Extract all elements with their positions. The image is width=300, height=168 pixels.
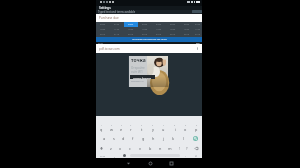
button[interactable]: b	[145, 143, 155, 153]
button[interactable]: 01:00	[110, 22, 124, 27]
button[interactable]: 5	[136, 123, 147, 133]
button[interactable]: n	[155, 143, 165, 153]
button[interactable]: 17:30	[194, 27, 202, 32]
staticText: 04:00	[156, 23, 162, 26]
button[interactable]: x	[115, 143, 125, 153]
staticText: 12:30	[128, 28, 134, 31]
button[interactable]: 22:15	[124, 32, 138, 37]
button[interactable]: Emoji	[119, 153, 129, 158]
button[interactable]: l	[178, 133, 188, 143]
button[interactable]: Advertisement	[128, 56, 168, 87]
button[interactable]: 24:15	[152, 32, 166, 37]
button[interactable]: g	[138, 133, 148, 143]
staticText: b	[149, 146, 152, 151]
button[interactable]: Shift	[96, 143, 106, 153]
staticText: 06:00	[184, 23, 190, 26]
button[interactable]: 11:30	[110, 27, 124, 32]
button[interactable]: 03:00	[138, 22, 152, 27]
staticText: .	[185, 154, 186, 158]
button[interactable]: 3	[116, 123, 126, 133]
button[interactable]: a	[100, 133, 109, 143]
button[interactable]: 1	[96, 123, 106, 133]
button[interactable]: Recents	[166, 158, 176, 168]
staticText: x	[119, 146, 122, 151]
button[interactable]: m	[165, 143, 175, 153]
staticText: y	[152, 127, 154, 132]
button[interactable]: 06:00	[180, 22, 194, 27]
button[interactable]: f	[128, 133, 138, 143]
button[interactable]: 14:30	[152, 27, 166, 32]
staticText: p	[195, 127, 198, 132]
staticText: 23:15	[142, 33, 148, 36]
button[interactable]: ?	[183, 143, 191, 153]
button[interactable]: s	[109, 133, 118, 143]
button[interactable]: j	[158, 133, 168, 143]
button[interactable]: c	[125, 143, 135, 153]
button[interactable]: 16:30	[180, 27, 194, 32]
button[interactable]: 13:30	[138, 27, 152, 32]
button[interactable]: 15:30	[166, 27, 180, 32]
button[interactable]: 25:15	[166, 32, 180, 37]
staticText: Complete the filled list per entry	[132, 38, 167, 41]
button[interactable]: pdf.to.we.com	[96, 44, 202, 53]
staticText: 5	[141, 124, 143, 127]
button[interactable]: 04:00	[152, 22, 166, 27]
button[interactable]: ,	[110, 153, 119, 158]
staticText: d	[122, 136, 125, 141]
button[interactable]: d	[118, 133, 128, 143]
staticText: 02:00	[128, 23, 134, 26]
button[interactable]: 0	[191, 123, 202, 133]
button[interactable]: ?123	[96, 153, 110, 158]
button[interactable]: k	[168, 133, 178, 143]
staticText: точка	[131, 57, 146, 64]
staticText: 05:00	[170, 23, 176, 26]
button[interactable]: v	[135, 143, 145, 153]
staticText: 03:00	[142, 23, 148, 26]
staticText: 7	[163, 124, 165, 127]
button[interactable]: 26:15	[180, 32, 194, 37]
button[interactable]: 05:00	[166, 22, 180, 27]
button[interactable]: !	[175, 143, 183, 153]
button[interactable]: 02:00	[124, 22, 138, 27]
button[interactable]: Search	[188, 133, 202, 143]
staticText: 26:15	[184, 33, 190, 36]
button[interactable]: 23:15	[138, 32, 152, 37]
button[interactable]: Complete the filled list per entry	[96, 37, 202, 42]
button[interactable]: 9	[180, 123, 191, 133]
staticText: 1	[101, 124, 103, 127]
staticText: f	[132, 136, 134, 141]
button[interactable]: Enter	[190, 153, 202, 158]
staticText: 01:00	[114, 23, 120, 26]
button[interactable]: h	[148, 133, 158, 143]
button[interactable]: 8	[169, 123, 180, 133]
button[interactable]: 07:00	[194, 22, 202, 27]
staticText: w	[110, 127, 113, 132]
button[interactable]: 4	[126, 123, 136, 133]
button[interactable]: 27:15	[194, 32, 202, 37]
staticText: o	[184, 127, 187, 132]
button[interactable]: 21:15	[110, 32, 124, 37]
button[interactable]: Back	[123, 158, 133, 168]
button[interactable]: 6	[147, 123, 158, 133]
staticText: a	[103, 136, 106, 141]
button[interactable]: z	[106, 143, 115, 153]
button[interactable]: 10:30	[96, 27, 110, 32]
button[interactable]: 00:00	[96, 22, 110, 27]
staticText: 20:15	[100, 33, 106, 36]
staticText: ?123	[100, 154, 106, 157]
staticText: n	[159, 146, 162, 151]
button[interactable]: 2	[106, 123, 116, 133]
button[interactable]: 12:30	[124, 27, 138, 32]
button[interactable]: Backspace	[191, 143, 202, 153]
button[interactable]: 7	[158, 123, 169, 133]
button[interactable]: 20:15	[96, 32, 110, 37]
button[interactable]: Purchase due	[96, 14, 202, 22]
staticText: 24:15	[156, 33, 162, 36]
staticText: 15:30	[170, 28, 176, 31]
button[interactable]: Узнать больше	[130, 75, 155, 79]
button[interactable]: Home	[145, 158, 155, 168]
staticText: счёт ИП	[131, 70, 143, 74]
